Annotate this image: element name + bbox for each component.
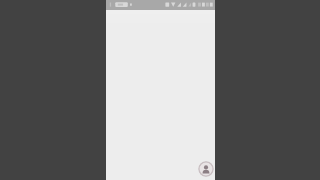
button[interactable]: Account	[198, 161, 214, 177]
